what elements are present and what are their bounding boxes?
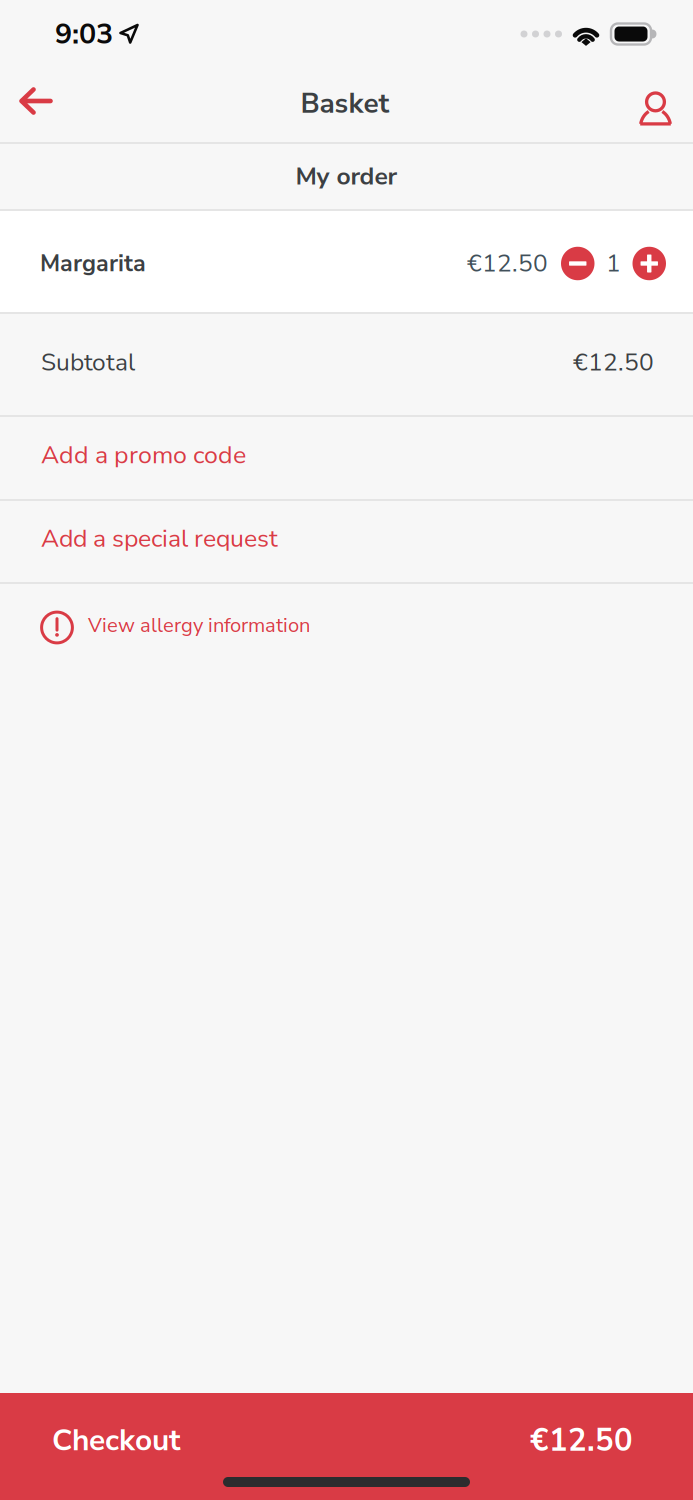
button[interactable]: Checkout bbox=[0, 1393, 693, 1500]
staticText: €12.50 bbox=[467, 247, 548, 280]
staticText: My order bbox=[295, 160, 397, 193]
button[interactable]: Decrease quantity bbox=[561, 247, 594, 280]
button[interactable]: Increase quantity bbox=[632, 247, 666, 280]
staticText: View allergy information bbox=[88, 612, 310, 639]
staticText: Add a special request bbox=[41, 522, 278, 555]
staticText: 9:03 bbox=[55, 14, 113, 53]
staticText: Add a promo code bbox=[41, 438, 246, 472]
button[interactable]: Add a special request bbox=[0, 501, 693, 582]
staticText: Basket bbox=[300, 84, 389, 123]
staticText: €12.50 bbox=[573, 346, 654, 379]
button[interactable]: Back bbox=[0, 68, 72, 142]
staticText: 1 bbox=[606, 247, 621, 280]
button[interactable]: View allergy information bbox=[0, 584, 693, 671]
staticText: Margarita bbox=[40, 248, 146, 279]
button[interactable]: Account bbox=[618, 68, 693, 142]
button[interactable]: Add a promo code bbox=[0, 417, 693, 499]
staticText: Checkout bbox=[52, 1420, 180, 1461]
staticText: €12.50 bbox=[530, 1419, 633, 1462]
staticText: Subtotal bbox=[41, 346, 135, 379]
